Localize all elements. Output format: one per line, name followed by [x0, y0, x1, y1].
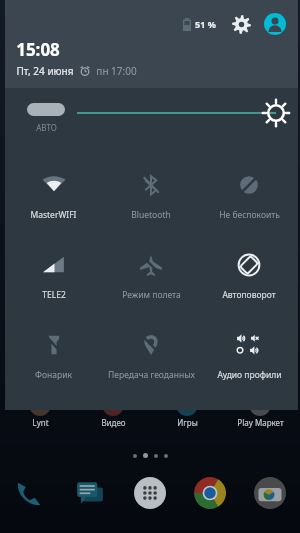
- staticText: Режим полета: [122, 289, 181, 301]
- staticText: АВТО: [36, 122, 57, 133]
- button[interactable]: Видео: [80, 405, 146, 428]
- button[interactable]: Аудио профили: [200, 314, 298, 394]
- staticText: MasterWIFI: [30, 209, 77, 221]
- button[interactable]: Play Маркет: [227, 405, 293, 428]
- button[interactable]: Игры: [154, 405, 220, 428]
- button[interactable]: Brightness slider: [77, 100, 292, 126]
- button[interactable]: All apps: [130, 473, 170, 513]
- button[interactable]: Bluetooth: [102, 154, 200, 234]
- button[interactable]: User profile: [262, 11, 288, 37]
- staticText: Видео: [101, 417, 126, 428]
- staticText: Не беспокоить: [219, 209, 280, 221]
- button[interactable]: Фонарик: [5, 314, 102, 394]
- button[interactable]: Chrome: [190, 473, 230, 513]
- staticText: пн 17:00: [96, 64, 137, 78]
- staticText: Play Маркет: [237, 417, 284, 428]
- staticText: Игры: [177, 417, 198, 428]
- staticText: 51 %: [195, 18, 216, 30]
- button[interactable]: Режим полета: [102, 234, 200, 314]
- staticText: TELE2: [42, 289, 66, 301]
- button[interactable]: Messages: [70, 473, 110, 513]
- staticText: Lynt: [32, 417, 49, 428]
- button[interactable]: Автоповорот: [200, 234, 298, 314]
- button[interactable]: Settings: [228, 11, 254, 37]
- button[interactable]: Передача геоданных: [102, 314, 200, 394]
- staticText: Передача геоданных: [108, 369, 195, 381]
- button[interactable]: TELE2: [5, 234, 102, 314]
- button[interactable]: MasterWIFI: [5, 154, 102, 234]
- staticText: Пт, 24 июня: [16, 64, 74, 78]
- button[interactable]: Auto brightness: [27, 103, 65, 116]
- staticText: Аудио профили: [217, 369, 282, 381]
- button[interactable]: Phone: [10, 473, 50, 513]
- button[interactable]: Camera: [250, 473, 290, 513]
- button[interactable]: Lynt: [7, 405, 73, 428]
- button[interactable]: Не беспокоить: [200, 154, 298, 234]
- staticText: Bluetooth: [131, 209, 171, 221]
- staticText: Автоповорот: [222, 289, 276, 301]
- staticText: Фонарик: [35, 369, 72, 381]
- staticText: 15:08: [16, 38, 60, 61]
